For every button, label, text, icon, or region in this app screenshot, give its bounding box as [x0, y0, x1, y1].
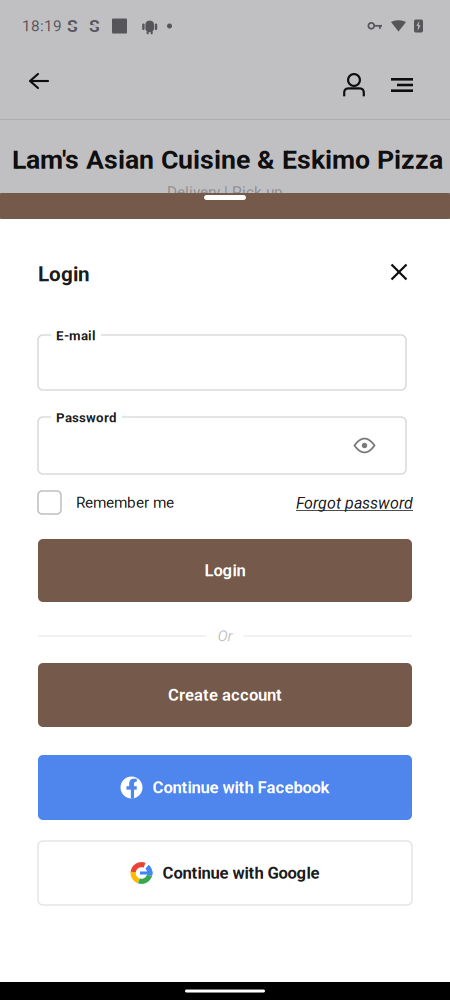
- button[interactable]: Account: [332, 63, 376, 107]
- button[interactable]: Create account: [38, 663, 412, 727]
- button[interactable]: Back: [17, 59, 61, 103]
- button[interactable]: Continue with Facebook: [38, 755, 412, 820]
- staticText: S: [67, 16, 78, 36]
- staticText: Forgot password: [296, 494, 413, 513]
- staticText: Continue with Google: [162, 863, 319, 883]
- staticText: Login: [204, 561, 245, 580]
- button[interactable]: Remember me: [38, 491, 174, 514]
- staticText: Lam's Asian Cuisine & Eskimo Pizza: [12, 144, 443, 175]
- staticText: Password: [56, 410, 117, 426]
- button[interactable]: Menu: [380, 63, 424, 107]
- button[interactable]: Forgot password: [296, 494, 413, 513]
- staticText: Remember me: [76, 493, 174, 511]
- button[interactable]: Continue with Google: [38, 841, 412, 905]
- button[interactable]: Login: [38, 539, 412, 602]
- button[interactable]: Close: [381, 254, 417, 290]
- staticText: Create account: [168, 685, 282, 705]
- staticText: Continue with Facebook: [152, 778, 329, 797]
- staticText: Login: [38, 262, 90, 286]
- staticText: Delivery | Pick up: [167, 183, 283, 201]
- staticText: Or: [217, 627, 232, 645]
- staticText: E-mail: [56, 328, 96, 344]
- staticText: S: [89, 16, 100, 36]
- staticText: 18:19: [22, 17, 62, 35]
